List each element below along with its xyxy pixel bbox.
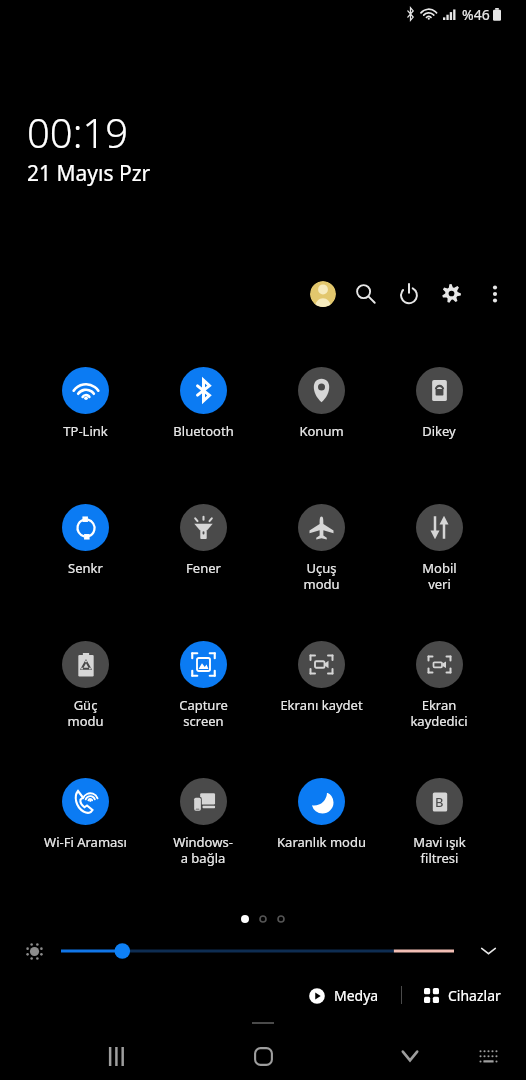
button[interactable]: Back: [388, 1034, 432, 1078]
staticText: Senkr: [68, 559, 103, 577]
staticText: %46: [462, 5, 490, 24]
staticText: Wi-Fi Araması: [44, 833, 127, 851]
button[interactable]: Search: [344, 272, 387, 315]
staticText: Uçuş modu: [303, 559, 340, 592]
staticText: Dikey: [422, 422, 456, 440]
button[interactable]: TP-Link: [29, 363, 141, 440]
button[interactable]: Cihazlar: [415, 981, 510, 1010]
button[interactable]: Home: [241, 1034, 285, 1078]
button[interactable]: Güç modu: [29, 637, 141, 729]
staticText: B: [435, 793, 444, 811]
button[interactable]: Senkr: [29, 500, 141, 577]
staticText: 21 Mayıs Pzr: [27, 159, 151, 188]
button[interactable]: Expand: [474, 937, 502, 965]
button[interactable]: B: [383, 774, 495, 866]
button[interactable]: Mobil veri: [383, 500, 495, 592]
button[interactable]: Dikey: [383, 363, 495, 440]
staticText: 00:19: [27, 105, 129, 159]
button[interactable]: Bluetooth: [147, 363, 259, 440]
button[interactable]: Recents: [94, 1034, 138, 1078]
button[interactable]: Power: [387, 272, 430, 315]
button[interactable]: Capture screen: [147, 637, 259, 729]
staticText: Ekran kaydedici: [410, 696, 468, 729]
staticText: Karanlık modu: [277, 833, 366, 851]
staticText: Mavi ışık filtresi: [413, 833, 466, 866]
button[interactable]: Profile: [301, 272, 344, 315]
staticText: Windows- a bağla: [173, 833, 233, 866]
staticText: Medya: [334, 986, 379, 1005]
button[interactable]: More options: [473, 272, 516, 315]
button[interactable]: Settings: [430, 272, 473, 315]
staticText: Capture screen: [179, 696, 228, 729]
button[interactable]: Fener: [147, 500, 259, 577]
staticText: Fener: [186, 559, 221, 577]
button[interactable]: Karanlık modu: [265, 774, 377, 851]
staticText: Bluetooth: [173, 422, 234, 440]
staticText: Konum: [299, 422, 344, 440]
staticText: Cihazlar: [448, 986, 501, 1005]
staticText: Ekranı kaydet: [280, 696, 363, 714]
button[interactable]: Uçuş modu: [265, 500, 377, 592]
staticText: TP-Link: [63, 422, 108, 440]
button[interactable]: Ekran kaydedici: [383, 637, 495, 729]
button[interactable]: Konum: [265, 363, 377, 440]
button[interactable]: Wi-Fi Araması: [29, 774, 141, 851]
button[interactable]: Medya: [300, 981, 388, 1010]
staticText: Mobil veri: [422, 559, 457, 592]
button[interactable]: Windows- a bağla: [147, 774, 259, 866]
staticText: Güç modu: [67, 696, 104, 729]
button[interactable]: Keyboard: [466, 1034, 510, 1078]
button[interactable]: Ekranı kaydet: [265, 637, 377, 714]
